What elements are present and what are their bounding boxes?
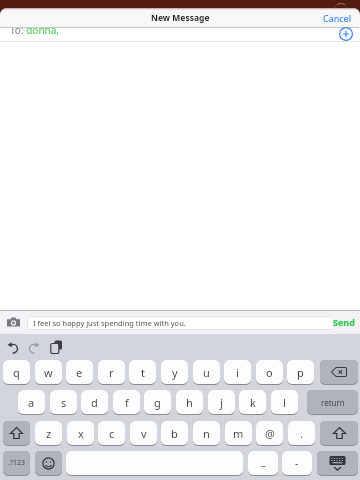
button[interactable]: _ [248,451,278,476]
button[interactable]: z [35,421,62,446]
staticText: g [154,395,161,410]
button[interactable] [7,317,20,327]
staticText: u [203,365,210,380]
staticText: s [61,395,67,410]
button[interactable]: Cancel [331,12,360,24]
button[interactable]: i [224,360,251,385]
staticText: q [13,365,20,380]
button[interactable]: v [130,421,157,446]
button[interactable] [317,451,358,476]
button[interactable]: q [3,360,30,385]
button[interactable]: - [282,451,312,476]
button[interactable]: b [161,421,188,446]
button[interactable]: y [161,360,188,385]
staticText: v [141,426,147,441]
staticText: To: donna, [10,28,60,36]
button[interactable]: m [225,421,252,446]
button[interactable]: . [288,421,315,446]
button[interactable]: u [193,360,220,385]
button[interactable]: p [287,360,314,385]
staticText: p [297,365,304,380]
staticText: t [141,365,145,380]
staticText: b [171,426,178,441]
button[interactable] [3,421,30,446]
button[interactable]: j [208,390,235,415]
staticText: j [220,395,223,410]
staticText: l [283,395,286,410]
button[interactable]: r [98,360,125,385]
staticText: i [236,365,239,380]
button[interactable]: a [18,390,45,415]
staticText: c [109,426,115,441]
staticText: x [78,426,84,441]
button[interactable]: f [113,390,140,415]
staticText: h [186,395,193,410]
button[interactable] [7,342,19,354]
staticText: - [295,456,299,470]
button[interactable]: .?123 [3,451,30,476]
staticText: o [266,365,273,380]
staticText: w [44,365,53,380]
button[interactable]: s [50,390,77,415]
button[interactable] [66,451,243,476]
button[interactable]: c [98,421,125,446]
staticText: f [125,395,129,410]
staticText: y [172,365,178,380]
staticText: e [76,365,83,380]
button[interactable]: t [129,360,156,385]
button[interactable]: o [256,360,283,385]
staticText: k [250,395,256,410]
staticText: @ [265,426,275,441]
button[interactable]: g [144,390,171,415]
button[interactable]: h [176,390,203,415]
staticText: Send [333,316,355,328]
button[interactable] [35,451,62,476]
button[interactable]: I feel so happy just spending time with … [27,316,334,330]
button[interactable]: return [307,390,358,415]
button[interactable]: e [66,360,93,385]
staticText: r [109,365,114,380]
button[interactable]: Send [338,316,360,328]
button[interactable] [339,27,353,41]
button[interactable]: l [271,390,298,415]
button[interactable]: To: donna, [0,28,360,41]
staticText: m [233,426,244,441]
button[interactable]: @ [256,421,283,446]
button[interactable]: n [193,421,220,446]
staticText: z [46,426,52,441]
staticText: .?123 [8,458,25,468]
button[interactable] [320,421,358,446]
button[interactable] [320,360,358,385]
staticText: a [28,395,35,410]
button[interactable]: w [35,360,62,385]
staticText: New Message [151,12,210,24]
button[interactable]: d [81,390,108,415]
staticText: I feel so happy just spending time with … [33,318,186,328]
staticText: Cancel [323,12,352,24]
staticText: return [321,397,345,408]
staticText: _ [261,454,266,468]
staticText: . [300,426,303,441]
button[interactable] [50,340,63,355]
button[interactable]: x [67,421,94,446]
button[interactable] [28,342,40,354]
staticText: d [91,395,98,410]
staticText: n [203,426,210,441]
button[interactable]: k [239,390,266,415]
